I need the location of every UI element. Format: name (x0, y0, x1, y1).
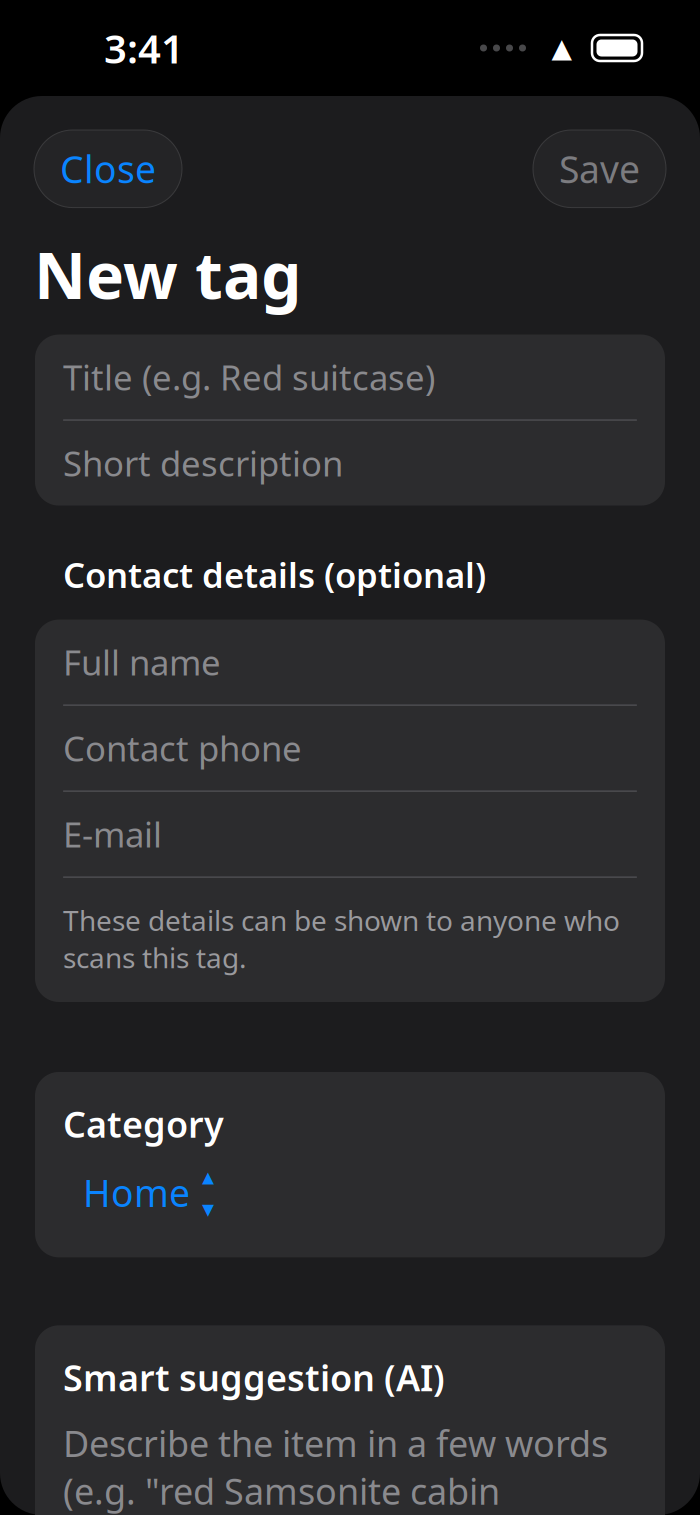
staticText: Category (63, 1100, 224, 1148)
staticText: Contact details (optional) (63, 552, 486, 598)
button[interactable]: Close (34, 130, 182, 208)
staticText: These details can be shown to anyone who… (63, 902, 620, 976)
staticText: New tag (34, 232, 301, 317)
staticText: ▴ (202, 1163, 214, 1190)
staticText: ▾ (202, 1195, 214, 1222)
staticText: Close (60, 144, 156, 194)
staticText: Smart suggestion (AI) (63, 1353, 445, 1401)
staticText: Short description (63, 440, 343, 486)
staticText: Home (83, 1168, 190, 1217)
staticText: 3:41 (104, 21, 184, 74)
staticText: Save (559, 144, 640, 194)
staticText: ▲ (551, 33, 572, 63)
staticText: Describe the item in a few words (e.g. "… (63, 1419, 608, 1515)
staticText: E-mail (63, 811, 162, 857)
button[interactable]: Save (533, 130, 666, 208)
staticText: Full name (63, 639, 221, 685)
button[interactable]: Home (71, 1160, 230, 1225)
staticText: Title (e.g. Red suitcase) (63, 354, 435, 400)
staticText: Contact phone (63, 725, 302, 771)
